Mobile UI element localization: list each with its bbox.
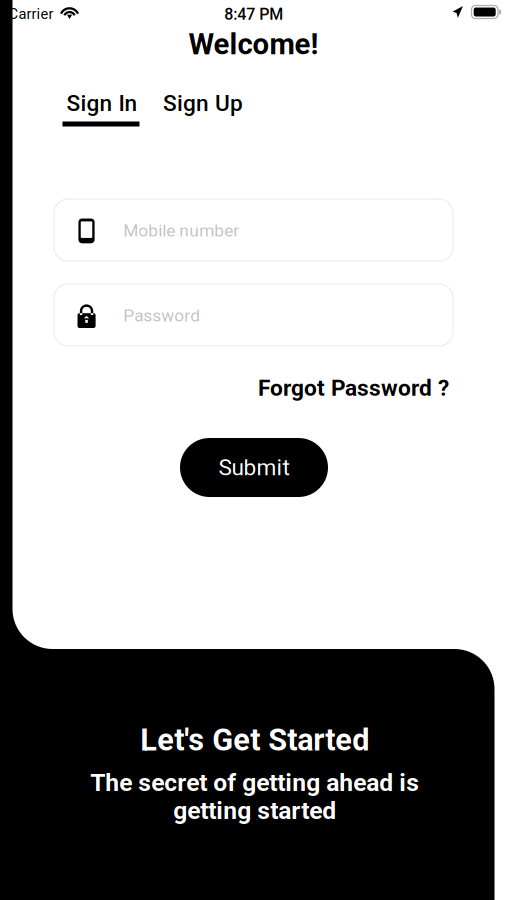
staticText: Submit — [218, 454, 289, 481]
staticText: Forgot Password ? — [258, 375, 449, 401]
staticText: getting started — [173, 796, 336, 825]
button[interactable]: Sign In — [62, 90, 148, 138]
button[interactable]: Submit — [180, 438, 328, 497]
staticText: Password — [123, 305, 200, 326]
button[interactable]: Forgot Password ? — [209, 373, 449, 403]
staticText: 8:47 PM — [224, 5, 283, 24]
button[interactable]: Sign Up — [163, 90, 249, 124]
staticText: The secret of getting ahead is — [90, 768, 419, 797]
staticText: Welcome! — [188, 27, 318, 61]
staticText: Let's Get Started — [140, 722, 369, 758]
staticText: Sign Up — [163, 90, 243, 117]
staticText: Mobile number — [123, 220, 239, 241]
staticText: Sign In — [66, 90, 137, 117]
staticText: Carrier — [9, 5, 54, 22]
